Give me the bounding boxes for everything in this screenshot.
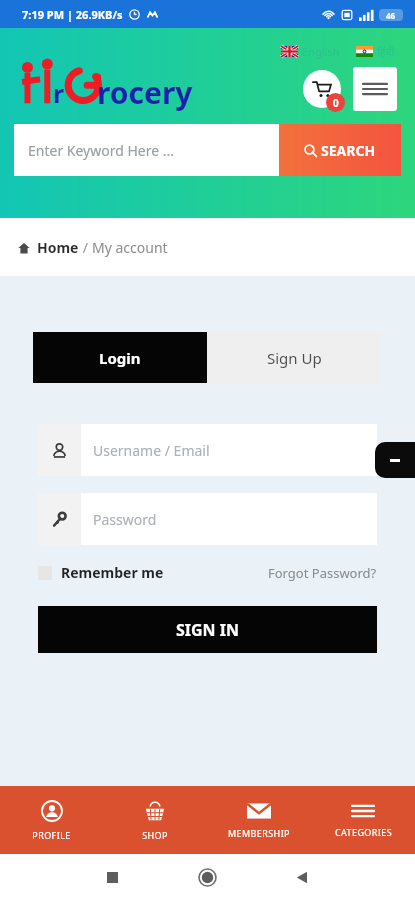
staticText: Enter Keyword Here ...: [28, 141, 175, 160]
button[interactable]: Menu: [353, 67, 397, 111]
staticText: Remember me: [61, 563, 164, 582]
staticText: SEARCH: [321, 141, 376, 160]
button[interactable]: हिंदी: [356, 44, 395, 59]
staticText: MEMBERSHIP: [228, 827, 290, 839]
button[interactable]: Forgot Password?: [268, 564, 377, 582]
button[interactable]: Sign Up: [207, 332, 382, 383]
staticText: SHOP: [142, 829, 168, 841]
button[interactable]: Enter Keyword Here ...: [14, 124, 279, 176]
staticText: English: [302, 44, 340, 59]
staticText: Password: [93, 510, 157, 529]
button[interactable]: SIGN IN: [38, 606, 377, 653]
button[interactable]: SHOP: [103, 786, 207, 854]
staticText: Username / Email: [93, 441, 210, 460]
button[interactable]: Password: [38, 493, 377, 545]
staticText: 0: [333, 96, 339, 110]
button[interactable]: SEARCH: [279, 124, 401, 176]
staticText: PROFILE: [32, 829, 71, 841]
button[interactable]: Open side panel: [375, 442, 415, 478]
button[interactable]: Remember me: [38, 563, 164, 582]
button[interactable]: Recent apps: [65, 854, 160, 900]
button[interactable]: MEMBERSHIP: [207, 786, 311, 854]
staticText: CATEGORIES: [335, 826, 392, 838]
button[interactable]: English: [281, 44, 340, 59]
button[interactable]: Home: [37, 238, 79, 257]
button[interactable]: Login: [33, 332, 207, 383]
staticText: rocery: [97, 72, 193, 113]
staticText: SIGN IN: [176, 619, 240, 641]
staticText: /: [79, 238, 92, 257]
staticText: Login: [99, 348, 141, 368]
button[interactable]: Username / Email: [38, 424, 377, 476]
staticText: हिंदी: [377, 44, 395, 59]
button[interactable]: PROFILE: [0, 786, 103, 854]
staticText: 7:19 PM | 26.9KB/s: [22, 7, 123, 22]
staticText: r: [53, 76, 65, 110]
button[interactable]: CATEGORIES: [311, 786, 415, 854]
button[interactable]: Cart, 0 items: [299, 66, 345, 112]
button[interactable]: Home: [160, 854, 255, 900]
staticText: 46: [386, 10, 396, 21]
staticText: Sign Up: [267, 348, 322, 368]
staticText: My account: [92, 238, 168, 257]
button[interactable]: Back: [255, 854, 350, 900]
